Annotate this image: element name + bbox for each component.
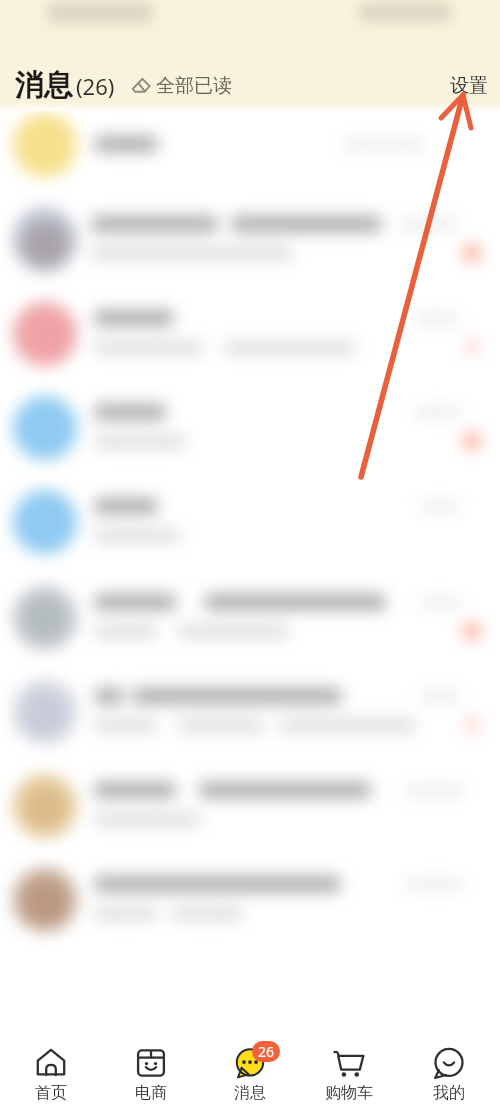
staticText: 首页 — [35, 1083, 67, 1103]
button[interactable]: 消息 — [202, 1016, 298, 1103]
button[interactable]: 设置 — [450, 74, 488, 98]
button[interactable]: 我的 — [401, 1016, 497, 1103]
staticText: 26 — [258, 1042, 275, 1061]
staticText: 我的 — [433, 1083, 465, 1103]
staticText: 消息 — [15, 67, 73, 104]
other: 我的 — [434, 1048, 464, 1078]
button[interactable]: 全部已读 — [132, 74, 232, 98]
staticText: 购物车 — [325, 1083, 373, 1103]
button[interactable]: 电商 — [103, 1016, 199, 1103]
staticText: 设置 — [450, 74, 488, 98]
button[interactable]: 购物车 — [301, 1016, 397, 1103]
staticText: (26) — [76, 71, 115, 101]
staticText: 消息 — [234, 1083, 266, 1103]
staticText: 电商 — [135, 1083, 167, 1103]
button[interactable]: 首页 — [3, 1016, 99, 1103]
staticText: 全部已读 — [156, 74, 232, 98]
other: 电商 — [136, 1048, 166, 1078]
other: 购物车 — [334, 1048, 364, 1078]
other: 首页 — [36, 1048, 66, 1078]
other: 消息 — [234, 1047, 266, 1078]
